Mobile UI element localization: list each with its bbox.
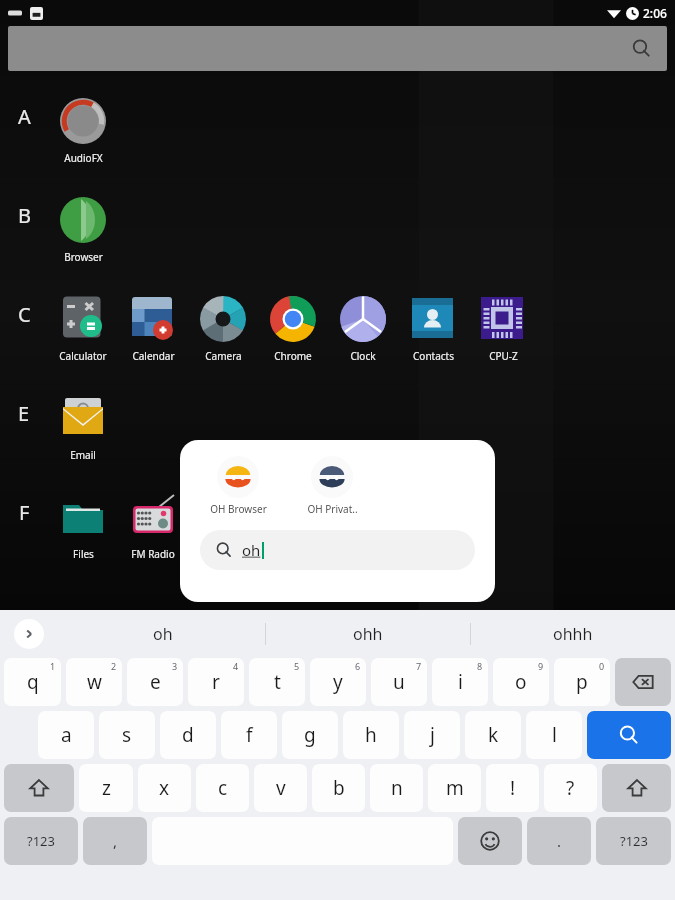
button[interactable]: w bbox=[66, 658, 122, 706]
button[interactable]: k bbox=[465, 711, 521, 759]
button[interactable]: ? bbox=[544, 764, 597, 812]
staticText: Browser bbox=[64, 250, 103, 264]
staticText: F bbox=[19, 499, 30, 526]
staticText: n bbox=[391, 775, 403, 801]
staticText: A bbox=[18, 103, 31, 130]
button[interactable]: p bbox=[554, 658, 610, 706]
staticText: 2:06 bbox=[643, 5, 667, 21]
button[interactable]: f bbox=[221, 711, 277, 759]
button[interactable]: OH Browser bbox=[202, 456, 274, 516]
button[interactable]: ohh bbox=[266, 610, 470, 658]
button[interactable]: q bbox=[4, 658, 61, 706]
button[interactable]: Calendar bbox=[118, 287, 188, 386]
staticText: y bbox=[333, 669, 343, 695]
button[interactable]: e bbox=[127, 658, 183, 706]
staticText: B bbox=[18, 202, 31, 229]
staticText: CPU-Z bbox=[489, 349, 518, 363]
button[interactable]: ?123 bbox=[596, 817, 671, 865]
button[interactable]: h bbox=[343, 711, 399, 759]
staticText: AudioFX bbox=[64, 151, 103, 165]
button[interactable]: AudioFX bbox=[48, 89, 118, 188]
staticText: , bbox=[113, 831, 118, 851]
staticText: m bbox=[446, 775, 464, 801]
staticText: Calculator bbox=[59, 349, 107, 363]
staticText: ohh bbox=[353, 623, 383, 645]
staticText: 8 bbox=[477, 660, 483, 672]
button[interactable]: v bbox=[254, 764, 307, 812]
staticText: oh bbox=[153, 623, 173, 645]
button[interactable]: Camera bbox=[188, 287, 258, 386]
staticText: h bbox=[365, 722, 377, 748]
staticText: ? bbox=[566, 775, 575, 801]
staticText: u bbox=[393, 669, 405, 695]
staticText: a bbox=[61, 722, 72, 748]
button[interactable]: . bbox=[527, 817, 591, 865]
button[interactable]: g bbox=[282, 711, 338, 759]
staticText: 3 bbox=[172, 660, 178, 672]
button[interactable]: Search apps bbox=[8, 26, 667, 71]
button[interactable]: x bbox=[138, 764, 191, 812]
staticText: ?123 bbox=[620, 832, 648, 850]
staticText: Email bbox=[70, 448, 96, 462]
button[interactable]: j bbox=[404, 711, 460, 759]
staticText: r bbox=[212, 669, 220, 695]
staticText: FM Radio bbox=[131, 547, 175, 561]
staticText: e bbox=[150, 669, 161, 695]
staticText: b bbox=[333, 775, 345, 801]
button[interactable]: More suggestions bbox=[14, 619, 44, 649]
button[interactable]: Browser bbox=[48, 188, 118, 287]
button[interactable]: l bbox=[526, 711, 582, 759]
button[interactable]: z bbox=[79, 764, 133, 812]
button[interactable]: OH Privat.. bbox=[296, 456, 368, 516]
staticText: Clock bbox=[350, 349, 376, 363]
button[interactable]: Backspace bbox=[615, 658, 671, 706]
button[interactable]: i bbox=[432, 658, 488, 706]
button[interactable]: Files bbox=[48, 485, 118, 584]
staticText: v bbox=[276, 775, 286, 801]
staticText: OH Browser bbox=[210, 502, 267, 516]
staticText: s bbox=[122, 722, 132, 748]
button[interactable]: n bbox=[370, 764, 423, 812]
staticText: 5 bbox=[294, 660, 300, 672]
button[interactable]: CPU-Z bbox=[468, 287, 538, 386]
button[interactable]: Calculator bbox=[48, 287, 118, 386]
button[interactable]: ?123 bbox=[4, 817, 78, 865]
button[interactable]: y bbox=[310, 658, 366, 706]
button[interactable]: , bbox=[83, 817, 147, 865]
button[interactable]: oh bbox=[60, 610, 265, 658]
staticText: x bbox=[159, 775, 170, 801]
button[interactable]: o bbox=[493, 658, 549, 706]
staticText: E bbox=[18, 400, 30, 427]
button[interactable]: d bbox=[160, 711, 216, 759]
button[interactable]: oh bbox=[200, 530, 475, 570]
button[interactable]: t bbox=[249, 658, 305, 706]
staticText: j bbox=[430, 722, 435, 748]
staticText: 7 bbox=[416, 660, 422, 672]
button[interactable]: ohhh bbox=[471, 610, 675, 658]
button[interactable]: Chrome bbox=[258, 287, 328, 386]
staticText: 1 bbox=[50, 660, 56, 672]
button[interactable]: ! bbox=[486, 764, 539, 812]
staticText: l bbox=[552, 722, 557, 748]
button[interactable]: b bbox=[312, 764, 365, 812]
button[interactable]: a bbox=[38, 711, 94, 759]
button[interactable]: FM Radio bbox=[118, 485, 188, 584]
button[interactable]: r bbox=[188, 658, 244, 706]
staticText: Files bbox=[73, 547, 94, 561]
button[interactable]: Shift bbox=[4, 764, 74, 812]
button[interactable]: u bbox=[371, 658, 427, 706]
button[interactable]: c bbox=[196, 764, 249, 812]
button[interactable]: Search bbox=[587, 711, 671, 759]
button[interactable]: s bbox=[99, 711, 155, 759]
staticText: Chrome bbox=[274, 349, 312, 363]
staticText: Contacts bbox=[413, 349, 454, 363]
button[interactable]: m bbox=[428, 764, 481, 812]
staticText: c bbox=[218, 775, 228, 801]
button[interactable]: Shift bbox=[602, 764, 671, 812]
button[interactable]: Email bbox=[48, 386, 118, 485]
button[interactable]: Contacts bbox=[398, 287, 468, 386]
button[interactable]: Clock bbox=[328, 287, 398, 386]
staticText: w bbox=[87, 669, 102, 695]
button[interactable]: Emoji bbox=[458, 817, 522, 865]
